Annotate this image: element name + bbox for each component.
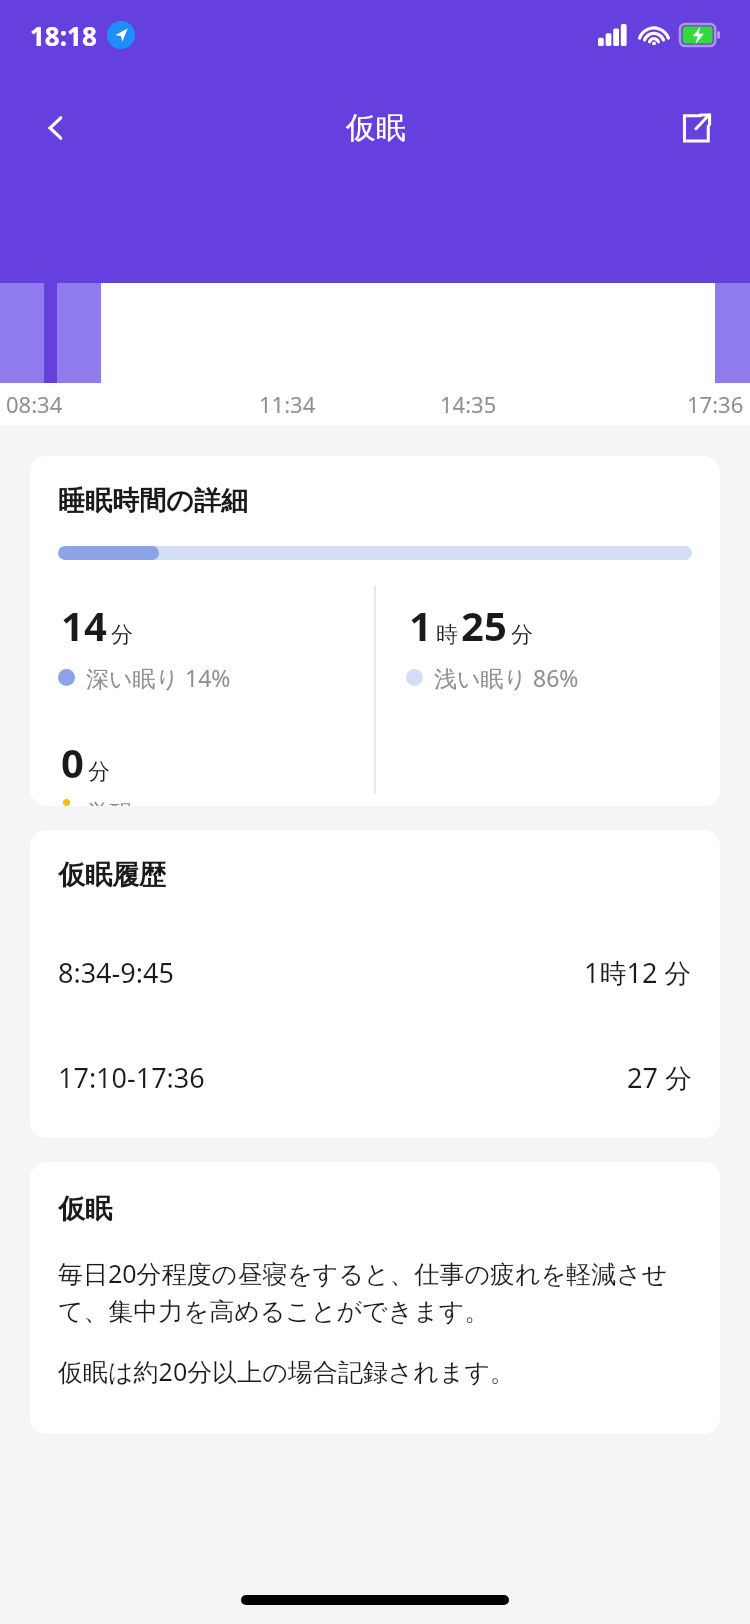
staticText: 1時12 分 — [584, 954, 692, 991]
staticText: 時 — [436, 621, 458, 649]
staticText: 14 — [61, 598, 107, 652]
button[interactable]: Back — [30, 102, 82, 154]
staticText: 仮眠 — [346, 109, 406, 147]
staticText: 覚醒 — [86, 799, 132, 806]
button[interactable]: 8:34-9:45 — [58, 954, 692, 991]
staticText: 11:34 — [259, 389, 316, 419]
staticText: 分 — [511, 621, 533, 649]
staticText: 分 — [88, 758, 110, 786]
staticText: 浅い眠り 86% — [434, 662, 579, 693]
button[interactable]: Share — [670, 102, 722, 154]
button[interactable]: 17:10-17:36 — [58, 1059, 692, 1096]
staticText: 仮眠履歴 — [58, 858, 166, 892]
staticText: 分 — [111, 621, 133, 649]
staticText: 仮眠 — [58, 1192, 112, 1226]
staticText: 08:34 — [6, 389, 63, 419]
staticText: 0 — [61, 735, 84, 789]
staticText: 仮眠は約20分以上の場合記録されます。 — [58, 1354, 516, 1388]
staticText: 27 分 — [627, 1059, 692, 1096]
staticText: 睡眠時間の詳細 — [58, 484, 248, 518]
button[interactable]: 睡眠時間の詳細 — [30, 456, 720, 806]
staticText: 25 — [461, 598, 507, 652]
staticText: 毎日20分程度の昼寝をすると、仕事の疲れを軽減させて、集中力を高めることができま… — [58, 1256, 692, 1328]
staticText: 17:36 — [687, 389, 744, 419]
staticText: 1 — [409, 598, 432, 652]
staticText: 深い眠り 14% — [86, 662, 231, 693]
staticText: 14:35 — [440, 389, 497, 419]
staticText: 8:34-9:45 — [58, 954, 174, 991]
staticText: 17:10-17:36 — [58, 1059, 205, 1096]
staticText: 18:18 — [30, 18, 97, 53]
